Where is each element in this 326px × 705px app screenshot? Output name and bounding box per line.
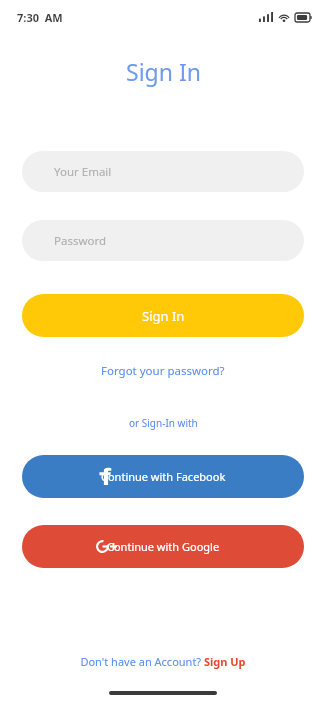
- button[interactable]: Continue with Facebook: [22, 455, 304, 498]
- staticText: or Sign-In with: [129, 416, 198, 430]
- staticText: Your Email: [54, 164, 112, 180]
- button[interactable]: Sign In: [22, 294, 304, 337]
- button[interactable]: Your Email: [22, 151, 304, 192]
- button[interactable]: Password: [22, 220, 304, 261]
- staticText: Continue with Google: [107, 539, 220, 554]
- button[interactable]: Continue with Google: [22, 525, 304, 568]
- staticText: Sign In: [142, 307, 185, 325]
- button[interactable]: Forgot your password?: [0, 363, 326, 379]
- staticText: Don't have an Account? Sign Up: [80, 654, 246, 669]
- staticText: Continue with Facebook: [101, 469, 226, 484]
- button[interactable]: Don't have an Account? Sign Up: [0, 654, 326, 669]
- staticText: 7:30 AM: [17, 10, 63, 25]
- staticText: Forgot your password?: [101, 363, 225, 379]
- staticText: Sign In: [126, 56, 201, 87]
- staticText: Password: [54, 233, 107, 249]
